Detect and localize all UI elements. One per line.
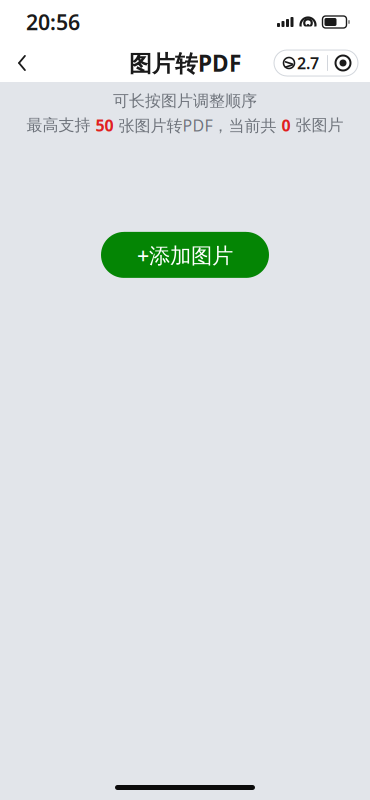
staticText: 0 [281, 115, 290, 136]
button[interactable]: 更多 [328, 50, 358, 76]
staticText: 可长按图片调整顺序 [113, 91, 257, 111]
staticText: 50 [95, 115, 113, 136]
button[interactable]: 返回 [0, 41, 44, 85]
button[interactable]: 2.7 [274, 50, 327, 76]
staticText: 最高支持 [26, 115, 95, 135]
staticText: 图片转PDF [129, 48, 241, 78]
staticText: 张图片 [290, 115, 343, 135]
staticText: 张图片转PDF，当前共 [113, 115, 281, 136]
staticText: +添加图片 [137, 241, 233, 269]
staticText: 2.7 [297, 52, 319, 74]
staticText: 20:56 [26, 8, 80, 36]
button[interactable]: +添加图片 [101, 232, 269, 278]
